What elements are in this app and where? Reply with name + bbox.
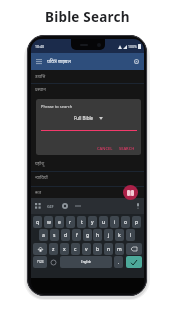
staticText: o (124, 219, 128, 226)
button[interactable] (126, 243, 142, 255)
staticText: r (69, 219, 72, 226)
button[interactable]: . (114, 256, 123, 268)
staticText: n (107, 246, 111, 253)
staticText: v (85, 246, 88, 253)
button[interactable]: v (82, 243, 91, 255)
staticText: . (118, 259, 120, 266)
staticText: a (42, 232, 45, 239)
button[interactable]: t (77, 216, 86, 228)
button[interactable]: ?123 (33, 256, 47, 268)
button[interactable] (33, 243, 47, 255)
button[interactable]: y (88, 216, 97, 228)
button[interactable]: p (132, 216, 141, 228)
staticText: g (86, 232, 90, 239)
staticText: h (96, 232, 100, 239)
staticText: t (81, 219, 83, 226)
button[interactable]: a (39, 229, 48, 241)
staticText: Bible Search (45, 8, 130, 26)
button[interactable]: c (71, 243, 80, 255)
button[interactable] (123, 185, 138, 200)
staticText: x (63, 246, 66, 253)
staticText: ?123 (37, 260, 44, 264)
button[interactable]: q (33, 216, 42, 228)
staticText: u (102, 219, 106, 226)
button[interactable]: n (104, 243, 113, 255)
staticText: SEARCH (119, 146, 135, 151)
button[interactable]: f (72, 229, 81, 241)
staticText: उत्पत्ति (35, 73, 46, 79)
button[interactable]: m (115, 243, 124, 255)
staticText: b (96, 246, 100, 253)
staticText: c (74, 246, 77, 253)
staticText: यहोशू (35, 160, 45, 166)
staticText: l (130, 232, 132, 239)
button[interactable] (49, 256, 58, 268)
button[interactable]: d (61, 229, 70, 241)
staticText: y (91, 219, 94, 226)
button[interactable]: h (93, 229, 102, 241)
button[interactable]: b (93, 243, 102, 255)
staticText: f (76, 232, 78, 239)
staticText: GIF (47, 204, 54, 209)
staticText: प्रस्थान (35, 86, 46, 92)
button[interactable]: j (104, 229, 113, 241)
staticText: q (36, 219, 40, 226)
button[interactable] (126, 256, 142, 268)
button[interactable]: i (110, 216, 119, 228)
button[interactable]: SEARCH (119, 146, 135, 151)
button[interactable]: CANCEL (97, 146, 113, 151)
staticText: 100% (128, 44, 137, 49)
staticText: s (53, 232, 56, 239)
staticText: k (118, 232, 121, 239)
button[interactable]: English (60, 256, 112, 268)
staticText: d (64, 232, 68, 239)
staticText: i (114, 219, 116, 226)
button[interactable]: e (55, 216, 64, 228)
staticText: j (108, 232, 110, 239)
staticText: English (81, 260, 92, 264)
button[interactable]: u (99, 216, 108, 228)
staticText: Phrase to search (41, 104, 73, 109)
staticText: 10:40 (35, 44, 44, 49)
button[interactable]: g (83, 229, 92, 241)
staticText: w (47, 219, 51, 226)
staticText: पवित्र बाइबल (47, 58, 71, 65)
staticText: e (58, 219, 61, 226)
button[interactable]: k (115, 229, 124, 241)
staticText: CANCEL (97, 146, 113, 151)
staticText: न्यायियों (35, 174, 48, 180)
button[interactable]: s (50, 229, 59, 241)
button[interactable]: l (126, 229, 135, 241)
staticText: p (135, 219, 139, 226)
button[interactable]: r (66, 216, 75, 228)
button[interactable]: o (121, 216, 130, 228)
button[interactable]: w (44, 216, 53, 228)
staticText: Full Bible (74, 115, 94, 121)
button[interactable]: z (49, 243, 58, 255)
staticText: m (117, 246, 122, 253)
button[interactable]: Full Bible (74, 115, 94, 121)
button[interactable]: x (60, 243, 69, 255)
staticText: रूत (35, 189, 42, 195)
staticText: z (52, 246, 55, 253)
